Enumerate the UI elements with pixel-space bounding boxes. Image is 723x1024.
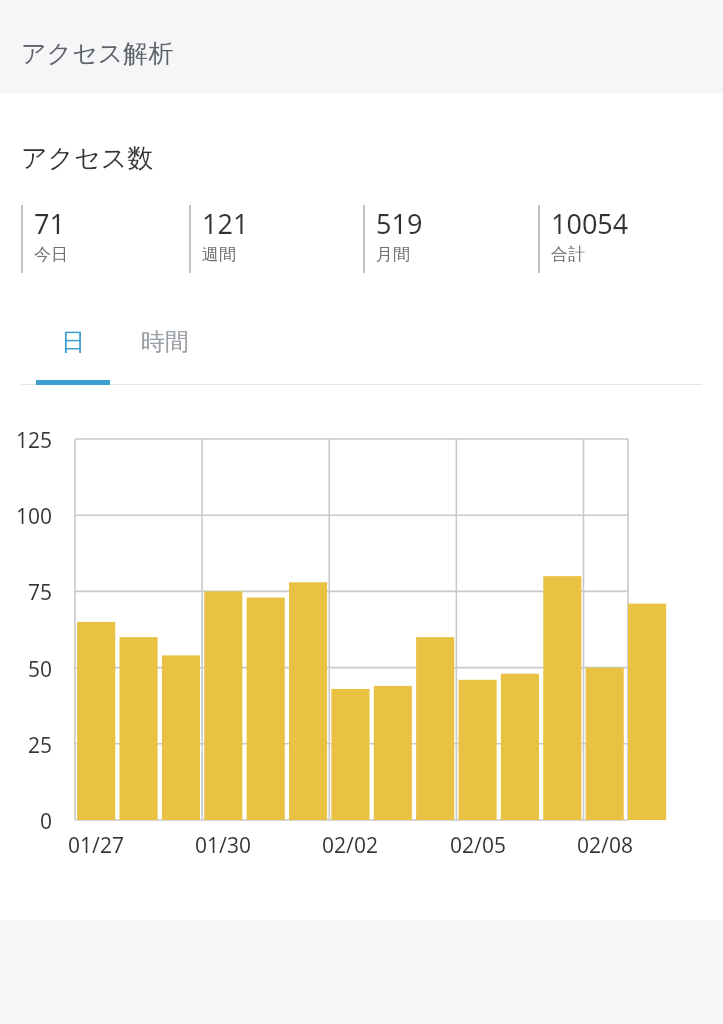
staticText: 100 <box>0 502 52 531</box>
button[interactable]: 日 <box>36 311 110 385</box>
staticText: 0 <box>0 807 52 836</box>
staticText: アクセス解析 <box>21 38 174 69</box>
staticText: 125 <box>0 426 52 455</box>
staticText: 時間 <box>141 327 189 357</box>
staticText: 週間 <box>202 244 236 265</box>
staticText: 02/02 <box>305 831 395 860</box>
staticText: 71 <box>34 205 65 242</box>
staticText: 10054 <box>551 205 629 242</box>
staticText: 月間 <box>376 244 410 265</box>
staticText: アクセス数 <box>21 142 154 175</box>
staticText: 日 <box>61 327 85 357</box>
staticText: 25 <box>0 731 52 760</box>
staticText: 50 <box>0 655 52 684</box>
staticText: 121 <box>202 205 249 242</box>
button[interactable]: 時間 <box>110 311 220 385</box>
staticText: 今日 <box>34 244 68 265</box>
staticText: 75 <box>0 578 52 607</box>
staticText: 01/27 <box>51 831 141 860</box>
staticText: 519 <box>376 205 423 242</box>
staticText: 01/30 <box>178 831 268 860</box>
staticText: 合計 <box>551 244 585 265</box>
staticText: 02/08 <box>560 831 650 860</box>
staticText: 02/05 <box>433 831 523 860</box>
